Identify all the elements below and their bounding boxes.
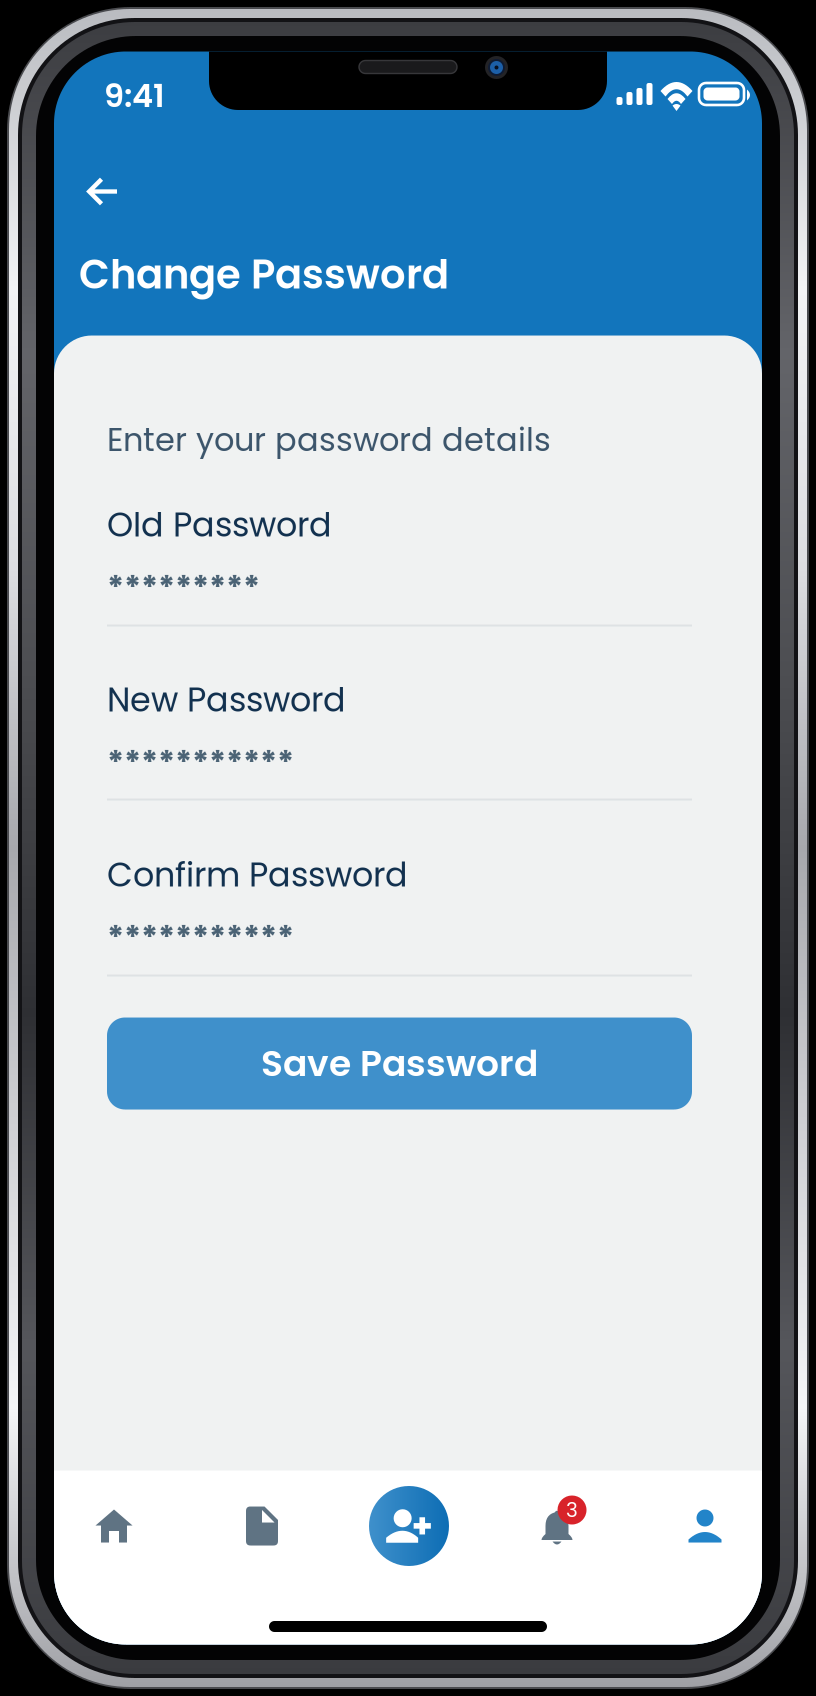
button[interactable]: Home [59,1468,169,1584]
staticText: New Password [107,676,346,723]
staticText: *********** [107,739,294,784]
button[interactable]: Profile [650,1468,760,1584]
staticText: Change Password [79,246,449,302]
button[interactable]: Documents [207,1468,317,1584]
staticText: 9:41 [104,73,165,118]
staticText: Old Password [107,501,332,548]
staticText: 3 [566,1496,578,1524]
staticText: Enter your password details [107,417,551,462]
button[interactable]: Notifications [502,1468,612,1584]
button[interactable]: Save Password [107,1017,692,1109]
staticText: ********* [107,564,260,609]
staticText: *********** [107,914,294,959]
button[interactable]: Add contact [354,1468,464,1584]
staticText: Confirm Password [107,851,408,898]
button[interactable]: Back [65,161,141,222]
staticText: Save Password [261,1038,538,1089]
